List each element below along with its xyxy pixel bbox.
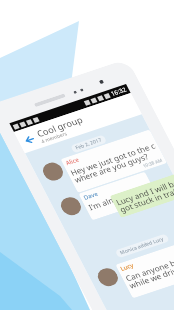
staticText: Lucy and I will be 5 min late, got stuck… xyxy=(109,151,174,236)
staticText: Can anyone buy me a coffee while we driv… xyxy=(119,221,174,310)
staticText: 10:38 AM xyxy=(140,151,165,174)
staticText: Alice xyxy=(62,152,83,171)
staticText: Cool group xyxy=(31,100,87,152)
button[interactable]: Back xyxy=(10,122,48,157)
staticText: Monica added Lucy xyxy=(117,222,167,269)
staticText: Feb 2, 2017 xyxy=(73,129,105,159)
staticText: 10:39 AM xyxy=(132,186,156,209)
staticText: I'm almost there! xyxy=(84,164,155,230)
staticText: Lucy xyxy=(117,258,137,276)
staticText: 4 members xyxy=(38,123,70,153)
staticText: 16:32 xyxy=(107,81,130,102)
staticText: Dave xyxy=(80,186,102,206)
staticText: Hey we just got to the cafe, where are y… xyxy=(64,115,165,210)
